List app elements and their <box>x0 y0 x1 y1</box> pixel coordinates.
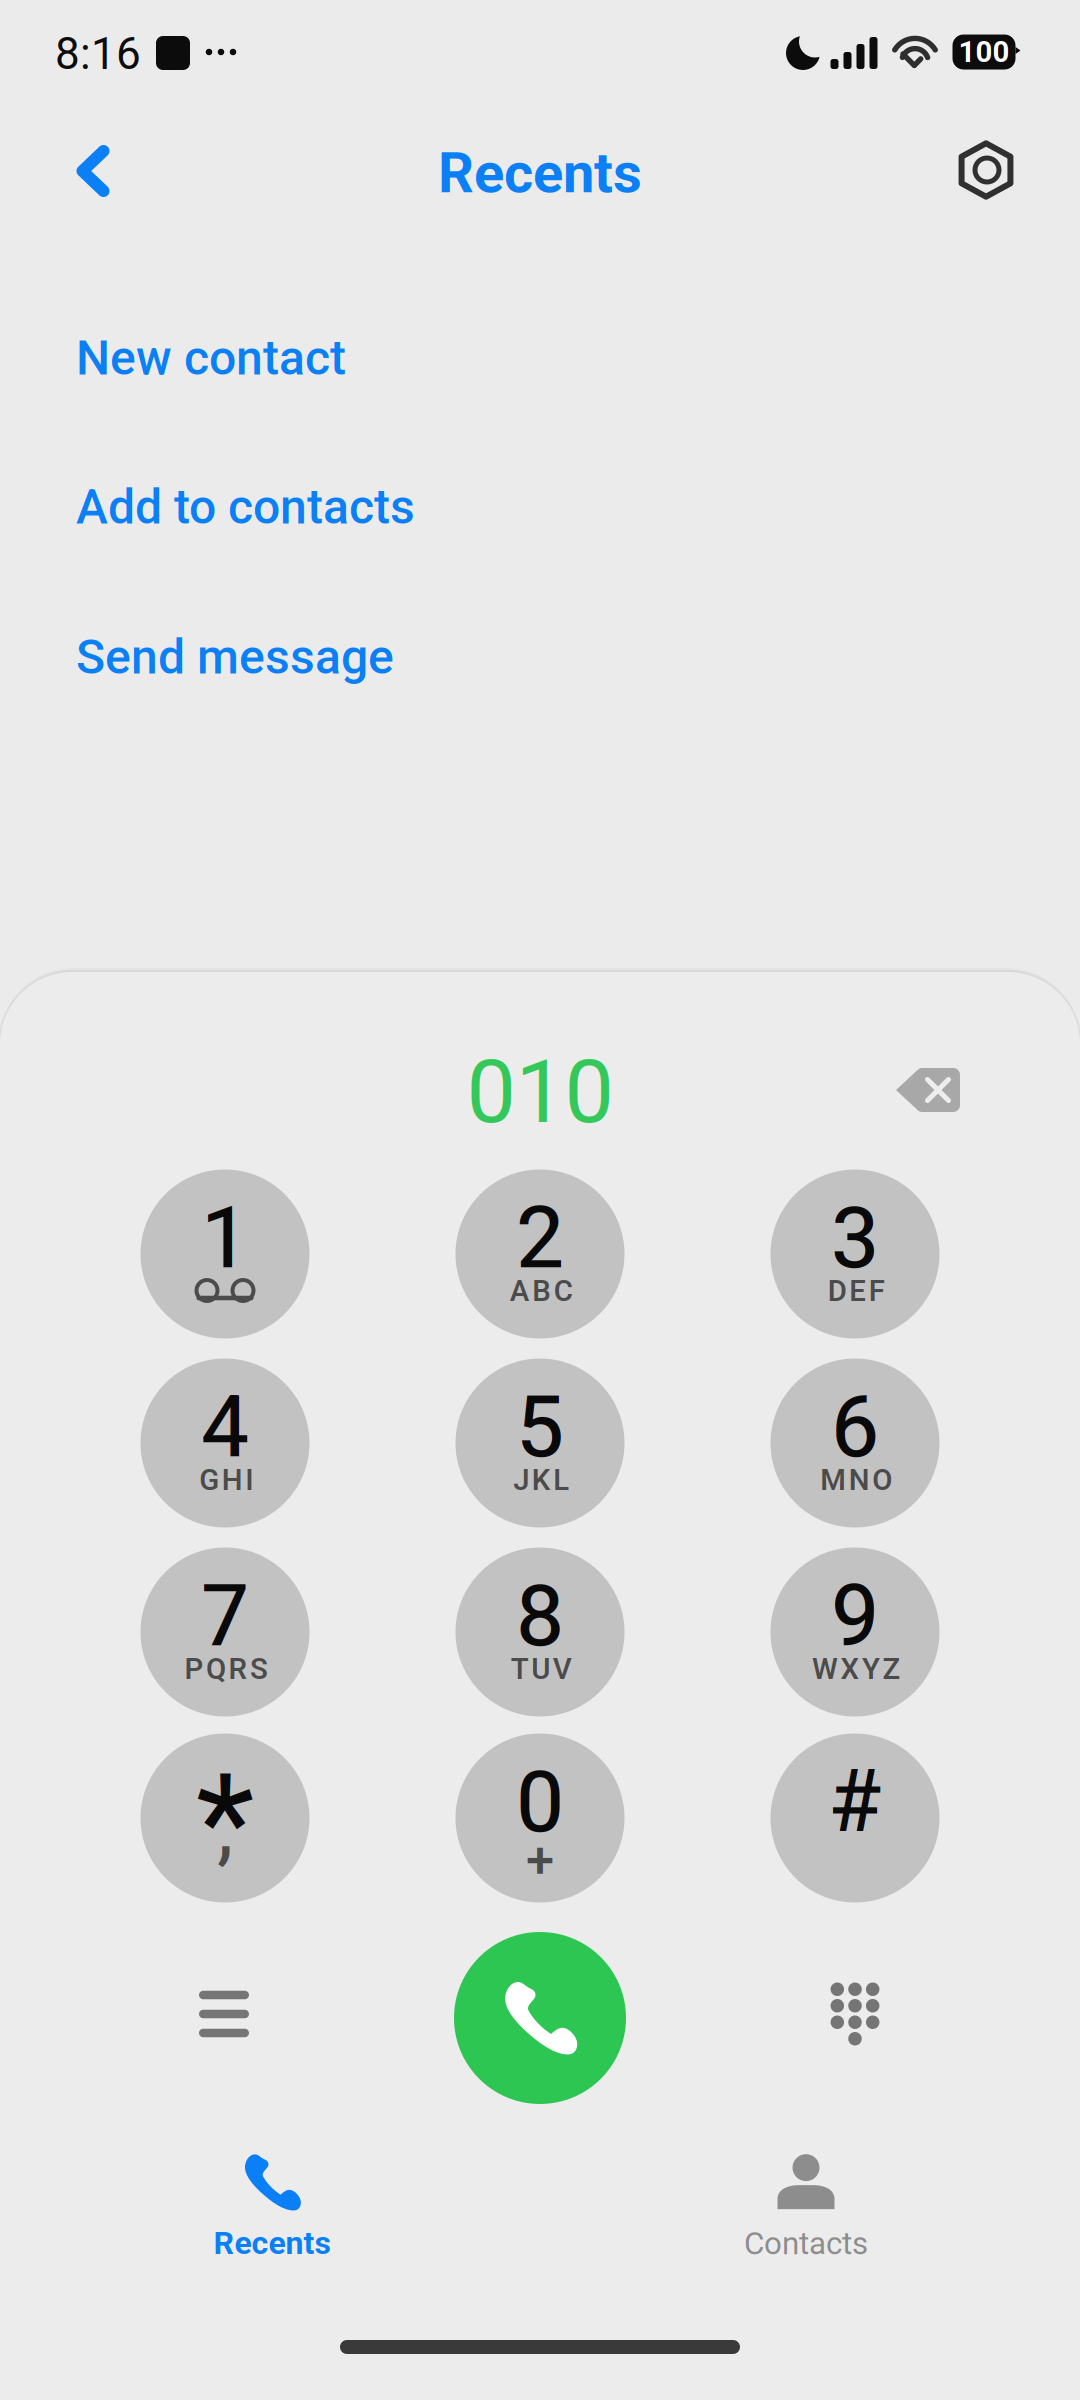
button[interactable]: Settings <box>932 115 1042 225</box>
staticText: 100 <box>958 35 1009 69</box>
button[interactable]: 3 <box>770 1169 939 1338</box>
staticText: 6 <box>831 1377 879 1477</box>
staticText: + <box>526 1830 554 1890</box>
button[interactable]: Add to contacts <box>76 457 636 557</box>
staticText: , <box>217 1779 233 1875</box>
button[interactable]: Keypad <box>780 1939 930 2089</box>
button[interactable]: Recents <box>62 2136 482 2276</box>
staticText: PQRS <box>184 1652 268 1686</box>
staticText: Add to contacts <box>76 479 415 535</box>
button[interactable]: 0 <box>455 1733 624 1902</box>
button[interactable]: 5 <box>455 1358 624 1527</box>
staticText: GHI <box>199 1463 253 1497</box>
button[interactable]: Back <box>38 116 148 226</box>
button[interactable]: 1 <box>140 1169 309 1338</box>
staticText: 0 <box>516 1752 564 1852</box>
staticText: TUV <box>511 1652 572 1686</box>
button[interactable]: # <box>770 1733 939 1902</box>
button[interactable]: 6 <box>770 1358 939 1527</box>
button[interactable]: 9 <box>770 1547 939 1716</box>
button[interactable]: 7 <box>140 1547 309 1716</box>
staticText: 4 <box>201 1377 249 1477</box>
staticText: WXYZ <box>812 1652 900 1686</box>
button[interactable]: Delete <box>872 1038 984 1142</box>
staticText: 5 <box>516 1377 564 1477</box>
staticText: Contacts <box>744 2225 868 2262</box>
staticText: 010 <box>466 1040 613 1143</box>
staticText: New contact <box>76 330 346 386</box>
button[interactable]: 4 <box>140 1358 309 1527</box>
staticText: * <box>196 1745 254 1901</box>
staticText: Send message <box>76 629 394 685</box>
staticText: 8 <box>516 1566 564 1666</box>
button[interactable]: 2 <box>455 1169 624 1338</box>
staticText: 7 <box>201 1566 249 1666</box>
button[interactable]: Call options <box>149 1939 299 2089</box>
staticText: Recents <box>438 140 642 206</box>
staticText: JKL <box>513 1463 569 1497</box>
staticText: 2 <box>516 1188 564 1288</box>
button[interactable]: Contacts <box>596 2138 1016 2278</box>
staticText: # <box>828 1750 881 1852</box>
button[interactable]: New contact <box>76 308 636 408</box>
staticText: ABC <box>510 1274 573 1308</box>
button[interactable]: 8 <box>455 1547 624 1716</box>
staticText: 9 <box>831 1566 879 1666</box>
staticText: 8:16 <box>55 28 141 80</box>
staticText: MNO <box>820 1463 892 1497</box>
staticText: DEF <box>828 1274 885 1308</box>
staticText: 3 <box>831 1188 879 1288</box>
staticText: 1 <box>201 1188 249 1288</box>
staticText: Recents <box>213 2224 330 2262</box>
button[interactable]: * <box>140 1733 309 1902</box>
button[interactable]: Call <box>454 1932 626 2104</box>
button[interactable]: Send message <box>76 607 636 707</box>
